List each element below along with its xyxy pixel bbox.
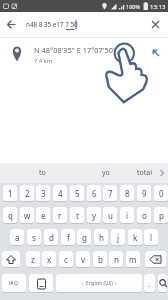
staticText: 5 bbox=[75, 188, 80, 199]
button[interactable]: ‹ English (US) › bbox=[56, 274, 142, 292]
staticText: p bbox=[159, 210, 164, 221]
staticText: 100% bbox=[126, 3, 141, 10]
staticText: 3 bbox=[41, 188, 46, 199]
button[interactable]: 7 bbox=[103, 185, 117, 201]
button[interactable]: n bbox=[109, 251, 123, 267]
staticText: v bbox=[81, 254, 86, 265]
button[interactable] bbox=[148, 17, 164, 33]
button[interactable]: f bbox=[61, 229, 75, 245]
button[interactable]: 0 bbox=[154, 185, 168, 201]
staticText: n48 8 35 e17 7 50 bbox=[26, 20, 78, 29]
button[interactable]: 1 bbox=[3, 185, 17, 201]
button[interactable]: z bbox=[26, 251, 40, 267]
button[interactable]: yo bbox=[84, 163, 128, 183]
button[interactable]: a bbox=[10, 229, 24, 245]
staticText: s bbox=[32, 232, 36, 243]
button[interactable] bbox=[2, 17, 18, 33]
button[interactable]: v bbox=[76, 251, 90, 267]
button[interactable]: m bbox=[126, 251, 140, 267]
button[interactable]: 4 bbox=[53, 185, 67, 201]
staticText: 0 bbox=[159, 188, 164, 199]
staticText: x bbox=[47, 254, 52, 265]
button[interactable]: total bbox=[128, 163, 162, 183]
button[interactable]: . bbox=[144, 274, 155, 292]
button[interactable]: 2 bbox=[20, 185, 34, 201]
staticText: 4 bbox=[58, 188, 63, 199]
staticText: 7.4 km bbox=[34, 57, 53, 65]
staticText: o bbox=[142, 210, 147, 221]
button[interactable]: q bbox=[3, 207, 17, 223]
button[interactable]: t bbox=[70, 207, 84, 223]
button[interactable]: s bbox=[27, 229, 41, 245]
button[interactable]: i bbox=[120, 207, 134, 223]
staticText: m bbox=[129, 254, 137, 265]
staticText: a bbox=[15, 232, 20, 243]
staticText: z bbox=[31, 254, 35, 265]
staticText: u bbox=[108, 210, 113, 221]
button[interactable]: r bbox=[53, 207, 67, 223]
staticText: g bbox=[82, 232, 87, 243]
button[interactable]: p bbox=[154, 207, 168, 223]
staticText: q bbox=[8, 210, 13, 221]
staticText: k bbox=[133, 232, 138, 243]
button[interactable]: N 48°08'35" E 17°07'50" bbox=[0, 38, 168, 72]
staticText: 7 bbox=[108, 188, 113, 199]
button[interactable]: k bbox=[128, 229, 142, 245]
button[interactable]: e bbox=[36, 207, 50, 223]
staticText: 13:13 bbox=[150, 3, 166, 11]
staticText: ‹ English (US) › bbox=[82, 280, 117, 287]
button[interactable]: to bbox=[20, 163, 64, 183]
button[interactable]: l bbox=[144, 229, 158, 245]
staticText: 2 bbox=[25, 188, 30, 199]
button[interactable] bbox=[158, 274, 167, 292]
staticText: e bbox=[41, 210, 46, 221]
staticText: i bbox=[126, 210, 129, 221]
staticText: y bbox=[92, 210, 97, 221]
button[interactable]: 3 bbox=[36, 185, 50, 201]
button[interactable]: 6 bbox=[87, 185, 101, 201]
staticText: N 48°08'35" E 17°07'50" bbox=[34, 45, 116, 55]
button[interactable]: x bbox=[42, 251, 56, 267]
button[interactable]: b bbox=[93, 251, 107, 267]
button[interactable]: h bbox=[94, 229, 108, 245]
staticText: b bbox=[98, 254, 103, 265]
button[interactable] bbox=[145, 251, 166, 267]
button[interactable] bbox=[2, 251, 20, 267]
staticText: 1 bbox=[8, 188, 13, 199]
button[interactable]: u bbox=[103, 207, 117, 223]
button[interactable] bbox=[29, 274, 53, 292]
button[interactable]: o bbox=[137, 207, 151, 223]
button[interactable]: j bbox=[111, 229, 125, 245]
button[interactable]: 8 bbox=[120, 185, 134, 201]
button[interactable]: g bbox=[77, 229, 91, 245]
button[interactable]: y bbox=[87, 207, 101, 223]
staticText: . bbox=[148, 278, 151, 289]
staticText: j bbox=[117, 232, 120, 243]
staticText: d bbox=[49, 232, 54, 243]
staticText: h bbox=[99, 232, 104, 243]
staticText: l bbox=[150, 232, 153, 243]
staticText: w bbox=[24, 210, 31, 221]
button[interactable]: c bbox=[59, 251, 73, 267]
button[interactable]: !#☺ bbox=[2, 274, 26, 292]
staticText: 6 bbox=[92, 188, 97, 199]
staticText: t bbox=[76, 210, 79, 221]
button[interactable]: 5 bbox=[70, 185, 84, 201]
staticText: 8 bbox=[125, 188, 130, 199]
staticText: !#☺ bbox=[9, 280, 19, 287]
staticText: c bbox=[64, 254, 68, 265]
staticText: to bbox=[39, 168, 46, 178]
button[interactable]: w bbox=[20, 207, 34, 223]
button[interactable]: d bbox=[44, 229, 58, 245]
staticText: yo bbox=[102, 168, 110, 178]
button[interactable]: 9 bbox=[137, 185, 151, 201]
staticText: n bbox=[114, 254, 119, 265]
staticText: 9 bbox=[142, 188, 147, 199]
staticText: f bbox=[67, 232, 70, 243]
staticText: r bbox=[58, 210, 62, 221]
staticText: total bbox=[137, 168, 153, 178]
